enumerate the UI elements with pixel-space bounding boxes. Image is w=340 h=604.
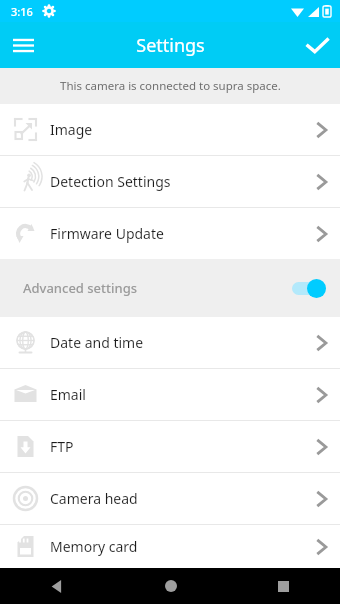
staticText: Date and time — [50, 333, 302, 352]
staticText: Detection Settings — [50, 172, 302, 191]
staticText: 3:16 — [11, 4, 33, 19]
button[interactable]: Image — [0, 104, 340, 155]
button[interactable]: Firmware Update — [0, 208, 340, 259]
staticText: Image — [50, 120, 302, 139]
staticText: Settings — [136, 33, 205, 58]
button[interactable]: Home — [114, 568, 227, 604]
button[interactable]: Email — [0, 369, 340, 420]
button[interactable]: Open navigation menu — [0, 22, 46, 68]
button[interactable]: FTP — [0, 421, 340, 472]
button[interactable]: Camera head — [0, 473, 340, 524]
button[interactable]: Advanced settings — [0, 277, 340, 299]
staticText: Memory card — [50, 537, 302, 556]
staticText: Camera head — [50, 489, 302, 508]
button[interactable]: Detection Settings — [0, 156, 340, 207]
staticText: Email — [50, 385, 302, 404]
button[interactable]: Back — [0, 568, 114, 604]
button[interactable]: Confirm settings — [294, 22, 340, 68]
staticText: FTP — [50, 437, 302, 456]
staticText: This camera is connected to supra space. — [60, 78, 281, 94]
staticText: Firmware Update — [50, 224, 302, 243]
staticText: Advanced settings — [23, 279, 290, 297]
button[interactable]: Memory card — [0, 525, 340, 568]
button[interactable]: Date and time — [0, 317, 340, 368]
button[interactable]: Recent apps — [227, 568, 340, 604]
